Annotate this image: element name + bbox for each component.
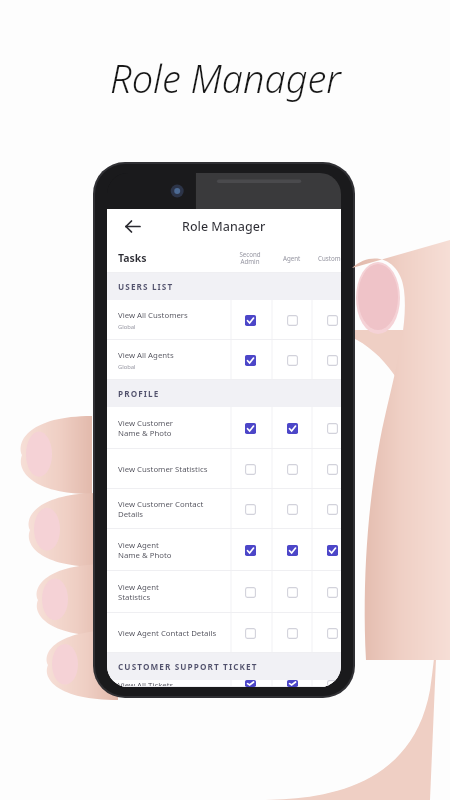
button[interactable]: Toggle permission [284,625,300,641]
button[interactable]: Toggle permission [324,312,340,328]
staticText: View Customer Name & Photo [118,418,174,438]
button[interactable]: View Customer Name & Photo [107,407,341,449]
staticText: USERS LIST [118,281,174,292]
staticText: View All Agents [118,350,174,361]
staticText: CUSTOMER SUPPORT TICKET [118,661,258,672]
button[interactable]: Toggle permission [284,584,300,600]
staticText: View Agent Statistics [118,582,159,602]
staticText: View Customer Contact Details [118,499,223,519]
staticText: PROFILE [118,388,160,399]
button[interactable]: Toggle permission [242,625,258,641]
staticText: View Agent Contact Details [118,628,217,639]
button[interactable]: Toggle permission [242,461,258,477]
button[interactable]: Toggle permission [324,542,340,558]
button[interactable]: View Agent Contact Details [107,613,341,653]
button[interactable]: View All Tickets [107,680,341,687]
button[interactable]: Toggle permission [242,542,258,558]
button[interactable]: View Customer Contact Details [107,489,341,529]
button[interactable]: Toggle permission [242,584,258,600]
button[interactable]: Toggle permission [284,420,300,436]
button[interactable]: Toggle permission [324,625,340,641]
button[interactable]: Toggle permission [324,584,340,600]
button[interactable]: PROFILE [107,380,341,407]
staticText: Global [118,323,136,331]
button[interactable]: Toggle permission [242,501,258,517]
button[interactable]: Toggle permission [242,680,258,687]
button[interactable]: Toggle permission [324,501,340,517]
staticText: View Customer Statistics [118,464,208,475]
staticText: Second Admin [239,250,261,266]
button[interactable]: Toggle permission [284,542,300,558]
button[interactable]: Toggle permission [284,501,300,517]
staticText: View All Tickets [118,680,174,687]
button[interactable]: Toggle permission [242,420,258,436]
button[interactable]: View All Customers [107,300,341,340]
button[interactable]: Back [115,209,149,243]
button[interactable]: Toggle permission [284,312,300,328]
button[interactable]: Toggle permission [284,680,300,687]
staticText: Tasks [118,251,147,265]
button[interactable]: Toggle permission [324,420,340,436]
button[interactable]: CUSTOMER SUPPORT TICKET [107,653,341,680]
button[interactable]: Toggle permission [324,680,340,687]
button[interactable]: View Agent Name & Photo [107,529,341,571]
button[interactable]: Toggle permission [324,352,340,368]
button[interactable]: Toggle permission [242,352,258,368]
staticText: Role Manager [110,52,341,104]
button[interactable]: View Customer Statistics [107,449,341,489]
button[interactable]: Toggle permission [324,461,340,477]
button[interactable]: Toggle permission [284,461,300,477]
staticText: Global [118,363,136,371]
button[interactable]: Toggle permission [242,312,258,328]
staticText: View Agent Name & Photo [118,540,172,560]
staticText: Role Manager [182,218,266,235]
button[interactable]: View Agent Statistics [107,571,341,613]
staticText: View All Customers [118,310,188,321]
staticText: Agent [283,254,301,262]
button[interactable]: View All Agents [107,340,341,380]
staticText: Customer [318,254,341,262]
button[interactable]: USERS LIST [107,273,341,300]
button[interactable]: Toggle permission [284,352,300,368]
